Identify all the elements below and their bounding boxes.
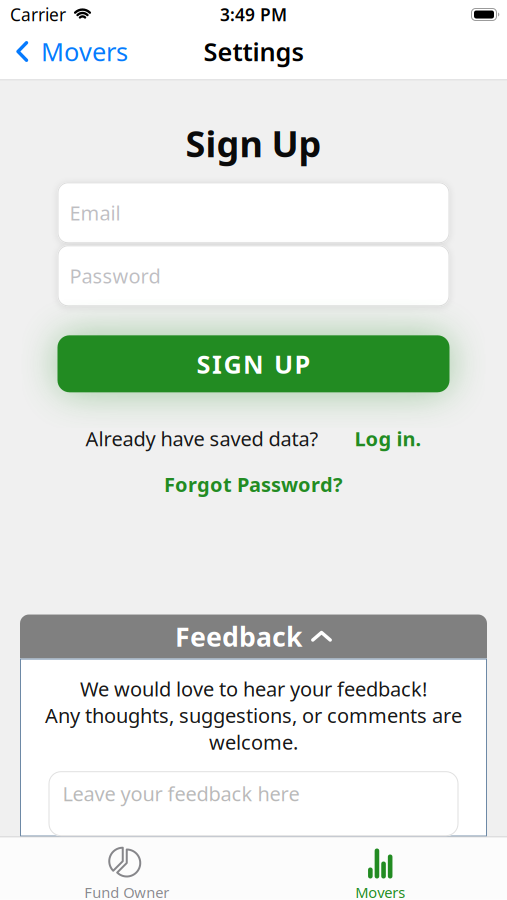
staticText: Leave your feedback here [62,780,299,807]
staticText: Password [69,262,160,289]
staticText: Carrier [10,3,66,26]
button[interactable]: Collapse Feedback [20,614,487,658]
button[interactable]: Password [57,245,449,306]
staticText: Any thoughts, suggestions, or comments a… [45,702,462,729]
staticText: welcome. [209,729,298,755]
staticText: Log in. [354,425,421,452]
staticText: We would love to hear your feedback! [80,675,427,702]
staticText: SIGN UP [196,347,310,381]
staticText: Movers [41,35,128,68]
staticText: Sign Up [185,119,321,167]
button[interactable]: Leave your feedback here [48,771,458,836]
staticText: Movers [355,882,405,900]
button[interactable]: Back to Movers [0,35,128,68]
staticText: Settings [203,35,303,68]
staticText: Feedback [175,619,303,654]
button[interactable]: Fund Owner [0,837,253,900]
button[interactable]: Forgot Password? [164,471,343,497]
button[interactable]: Movers [253,837,507,900]
staticText: Already have saved data? [85,425,318,452]
staticText: 3:49 PM [220,3,287,26]
button[interactable]: Log in. [354,425,421,452]
staticText: Forgot Password? [164,471,343,497]
staticText: Fund Owner [84,882,169,900]
button[interactable]: Email [57,182,449,243]
staticText: Email [69,199,120,226]
button[interactable]: SIGN UP [57,335,449,392]
